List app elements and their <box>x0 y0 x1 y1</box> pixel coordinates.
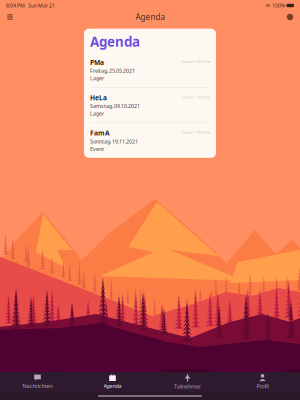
staticText: Profil <box>256 383 268 390</box>
button[interactable]: FamA <box>84 123 216 158</box>
staticText: Agenda <box>103 382 121 390</box>
button[interactable]: PMa <box>84 52 216 88</box>
staticText: 100% <box>272 2 285 9</box>
button[interactable]: Nachrichten <box>0 372 75 392</box>
button[interactable]: Profil <box>225 371 300 393</box>
staticText: Dauert 1 Woche <box>182 94 210 99</box>
button[interactable]: HeLa <box>84 88 216 123</box>
staticText: Agenda <box>90 33 140 50</box>
staticText: Freitag, 25.05.2021 <box>90 67 135 74</box>
staticText: Samstag, 09.10.2021 <box>90 102 140 110</box>
button[interactable]: Menu <box>2 11 18 23</box>
button[interactable]: Settings <box>282 11 298 23</box>
staticText: Dauert 1 Woche <box>182 59 210 64</box>
staticText: Dauert 1 Woche <box>182 129 210 135</box>
staticText: Agenda <box>135 12 164 22</box>
staticText: Lager <box>90 75 104 82</box>
staticText: Event <box>90 145 104 152</box>
button[interactable]: Agenda <box>75 371 150 393</box>
staticText: Sonntag, 19.11.2021 <box>90 138 138 145</box>
staticText: FamA <box>90 128 110 137</box>
staticText: Nachrichten <box>22 382 52 389</box>
staticText: 8:04 PM <box>6 2 25 9</box>
staticText: PMa <box>90 58 104 67</box>
staticText: HeLa <box>90 93 107 102</box>
staticText: Sun Mar 21 <box>25 2 55 9</box>
staticText: Teilnehmer <box>174 383 201 390</box>
staticText: Lager <box>90 110 104 117</box>
button[interactable]: Teilnehmer <box>150 371 225 393</box>
